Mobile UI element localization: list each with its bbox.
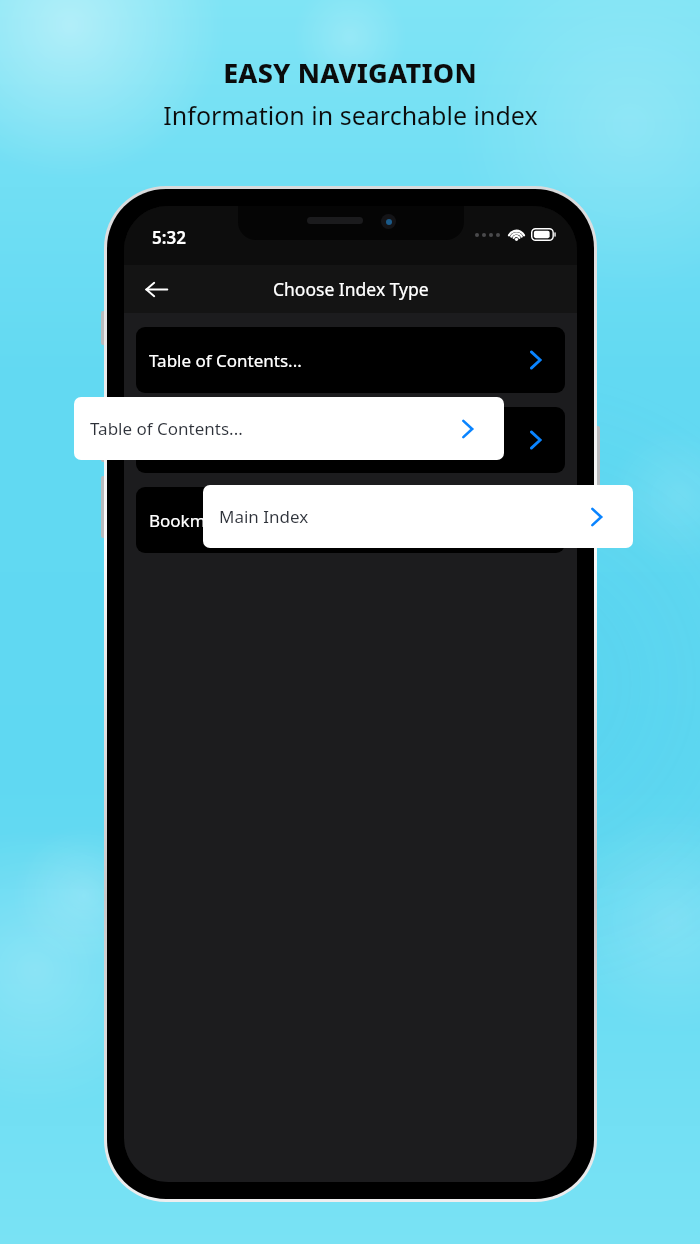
button[interactable]: Table of Contents... — [74, 397, 504, 460]
staticText: Bookmarks... — [149, 509, 254, 532]
staticText: Search Index... — [149, 429, 266, 452]
button[interactable]: Bookmarks... — [136, 487, 565, 553]
staticText: Main Index — [219, 505, 309, 528]
staticText: Information in searchable index — [163, 98, 538, 132]
button[interactable]: Search Index... — [136, 407, 565, 473]
button[interactable]: Main Index — [203, 485, 633, 548]
staticText: 5:32 — [152, 226, 186, 249]
button[interactable]: Table of Contents... — [136, 327, 565, 393]
staticText: Table of Contents... — [149, 349, 302, 372]
button[interactable]: Back — [134, 267, 178, 311]
staticText: EASY NAVIGATION — [223, 54, 477, 91]
staticText: Choose Index Type — [273, 277, 429, 301]
staticText: Table of Contents... — [90, 417, 243, 440]
